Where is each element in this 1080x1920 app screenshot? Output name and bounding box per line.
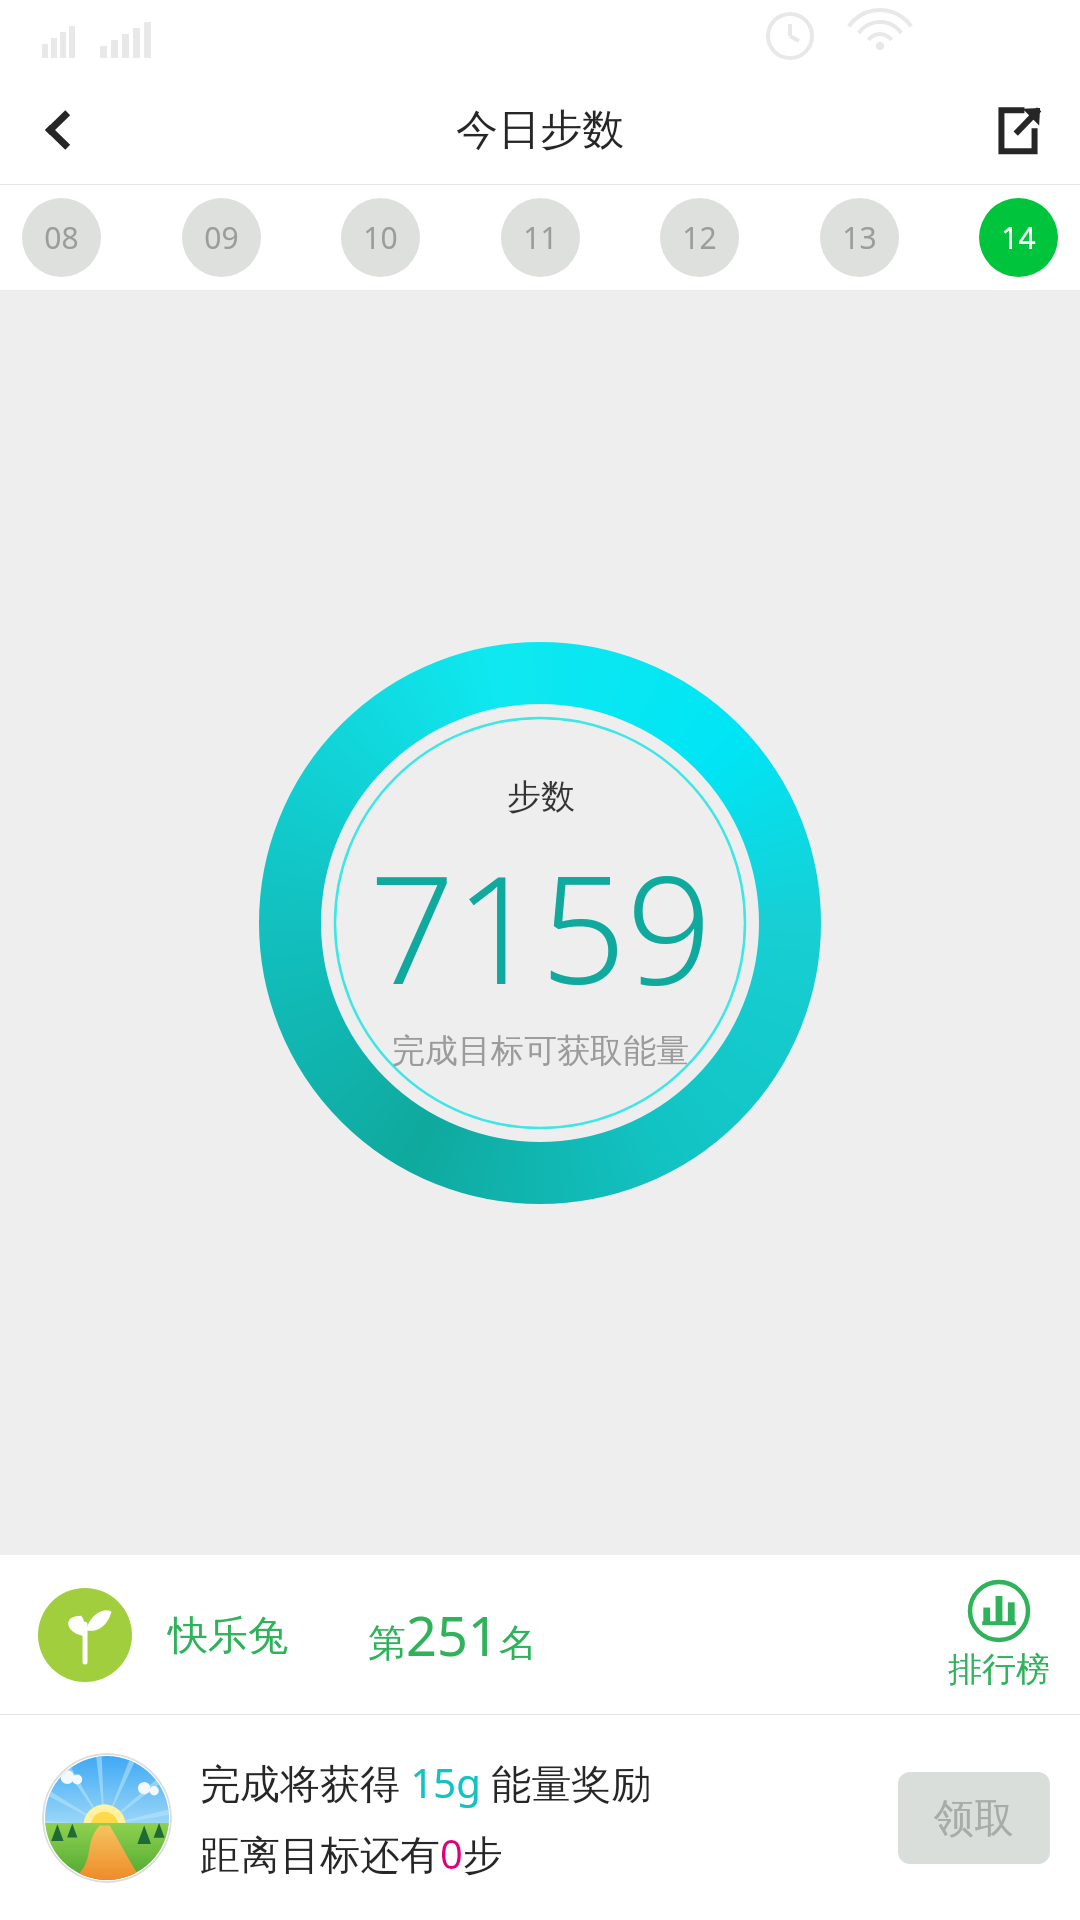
staticText: 排行榜 xyxy=(948,1648,1050,1691)
button[interactable]: 快乐兔 xyxy=(0,1555,1080,1715)
button[interactable]: 11 xyxy=(501,198,580,277)
staticText: 步数 xyxy=(507,775,575,818)
staticText: 7159 xyxy=(369,824,712,1028)
staticText: 快乐兔 xyxy=(168,1610,288,1660)
button[interactable]: 13 xyxy=(820,198,899,277)
button[interactable]: 排行榜 xyxy=(948,1580,1050,1691)
staticText: 距离目标还有0步 xyxy=(200,1826,503,1881)
staticText: 13 xyxy=(842,217,877,258)
staticText: 08 xyxy=(44,217,79,258)
button[interactable]: 10 xyxy=(341,198,420,277)
button[interactable]: 08 xyxy=(22,198,101,277)
button[interactable]: 12 xyxy=(660,198,739,277)
staticText: 完成目标可获取能量 xyxy=(392,1030,689,1072)
staticText: 完成将获得 15g 能量奖励 xyxy=(200,1755,652,1810)
button[interactable]: 14 xyxy=(979,198,1058,277)
button[interactable]: Share xyxy=(978,90,1058,170)
button[interactable]: Back xyxy=(20,92,96,168)
staticText: 14 xyxy=(1001,217,1036,258)
button[interactable]: 领取 xyxy=(898,1772,1050,1864)
staticText: 今日步数 xyxy=(456,104,624,157)
staticText: 第251名 xyxy=(368,1598,537,1672)
staticText: 09 xyxy=(204,217,239,258)
button[interactable]: 09 xyxy=(182,198,261,277)
staticText: 12 xyxy=(682,217,717,258)
staticText: 10 xyxy=(363,217,398,258)
staticText: 领取 xyxy=(934,1793,1014,1843)
staticText: 11 xyxy=(523,217,558,258)
